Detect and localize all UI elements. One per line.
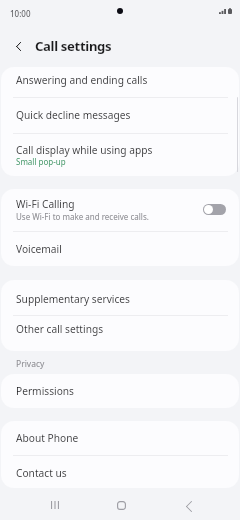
button[interactable]: Permissions bbox=[0, 374, 240, 408]
staticText: Quick decline messages bbox=[16, 108, 131, 122]
button[interactable]: Back bbox=[5, 30, 32, 62]
staticText: About Phone bbox=[16, 431, 79, 445]
staticText: Small pop-up bbox=[16, 156, 66, 167]
staticText: 10:00 bbox=[10, 8, 31, 19]
staticText: Call display while using apps bbox=[16, 143, 153, 157]
staticText: Voicemail bbox=[16, 242, 62, 256]
staticText: Use Wi-Fi to make and receive calls. bbox=[16, 211, 149, 222]
staticText: Answering and ending calls bbox=[16, 73, 148, 87]
button[interactable]: Other call settings bbox=[0, 315, 240, 351]
staticText: Privacy bbox=[16, 358, 45, 370]
staticText: Contact us bbox=[16, 466, 67, 480]
staticText: Permissions bbox=[16, 384, 74, 398]
button[interactable]: Voicemail bbox=[0, 231, 240, 266]
button[interactable]: Recent apps bbox=[33, 492, 74, 518]
button[interactable]: Quick decline messages bbox=[0, 97, 240, 133]
staticText: Supplementary services bbox=[16, 292, 130, 306]
button[interactable]: Call display while using apps bbox=[0, 133, 240, 175]
staticText: Wi-Fi Calling bbox=[16, 197, 75, 211]
staticText: Other call settings bbox=[16, 322, 104, 336]
staticText: Call settings bbox=[35, 37, 112, 55]
button[interactable]: Supplementary services bbox=[0, 280, 240, 315]
button[interactable]: Home bbox=[100, 492, 141, 518]
button[interactable]: Answering and ending calls bbox=[0, 67, 240, 98]
button[interactable]: Back bbox=[167, 492, 208, 518]
button[interactable]: Contact us bbox=[0, 455, 240, 489]
button[interactable]: Wi-Fi Calling bbox=[0, 189, 240, 231]
button[interactable]: Wi-Fi Calling toggle, off bbox=[203, 204, 226, 215]
button[interactable]: About Phone bbox=[0, 421, 240, 455]
